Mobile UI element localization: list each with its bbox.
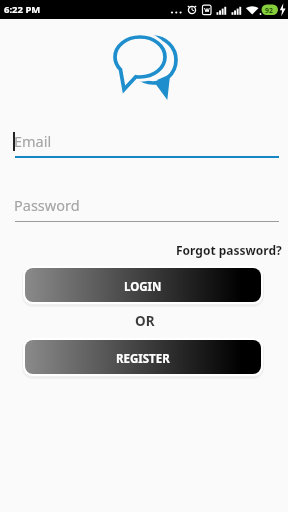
staticText: 6:22 PM [4, 3, 41, 16]
button[interactable]: REGISTER [25, 340, 261, 374]
button[interactable]: LOGIN [25, 268, 261, 302]
staticText: 92 [265, 6, 274, 16]
button[interactable]: Password [10, 194, 280, 224]
staticText: Password [14, 195, 80, 215]
staticText: REGISTER [116, 351, 170, 367]
staticText: LOGIN [124, 279, 162, 295]
staticText: Forgot password? [176, 242, 282, 258]
staticText: Email [14, 131, 52, 151]
staticText: OR [135, 312, 155, 330]
button[interactable]: Email [10, 128, 280, 160]
button[interactable]: Forgot password? [170, 240, 288, 260]
